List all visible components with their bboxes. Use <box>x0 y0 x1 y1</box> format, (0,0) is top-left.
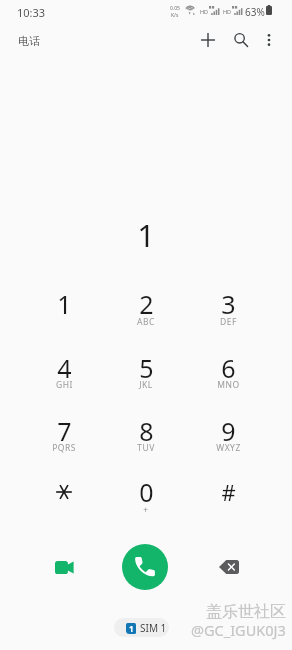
staticText: @GC_IGUK0J3 <box>191 620 286 640</box>
staticText: 6 <box>221 351 236 385</box>
button[interactable] <box>105 461 187 524</box>
button[interactable] <box>187 337 269 400</box>
staticText: JKL <box>139 379 153 391</box>
staticText: 1 <box>57 287 72 321</box>
button[interactable] <box>105 273 187 336</box>
staticText: HD <box>200 8 209 15</box>
staticText: 盖乐世社区 <box>206 602 286 622</box>
staticText: TUV <box>137 442 155 454</box>
button[interactable] <box>187 461 269 524</box>
staticText: 4 <box>57 351 72 385</box>
staticText: 2 <box>139 287 154 321</box>
button[interactable] <box>187 400 269 463</box>
button[interactable]: Search <box>225 24 257 56</box>
staticText: MNO <box>217 379 240 391</box>
staticText: GHI <box>56 379 73 391</box>
staticText: ABC <box>137 316 155 328</box>
staticText: 1 <box>129 623 134 634</box>
button[interactable]: More options <box>253 24 285 56</box>
staticText: WXYZ <box>216 442 241 454</box>
staticText: 1 <box>137 214 155 256</box>
button[interactable] <box>105 337 187 400</box>
button[interactable] <box>187 273 269 336</box>
staticText: DEF <box>220 316 237 328</box>
staticText: HD <box>223 8 232 15</box>
button[interactable] <box>105 400 187 463</box>
staticText: + <box>143 504 149 516</box>
staticText: 63% <box>245 5 265 19</box>
button[interactable] <box>23 461 105 524</box>
staticText: 3 <box>221 287 236 321</box>
button[interactable] <box>23 337 105 400</box>
button[interactable]: Add contact <box>192 24 224 56</box>
staticText: 7 <box>57 414 72 448</box>
button[interactable]: Call <box>122 544 168 590</box>
button[interactable]: 1 <box>114 618 169 637</box>
staticText: # <box>221 477 236 507</box>
button[interactable]: Backspace <box>211 549 247 585</box>
button[interactable] <box>23 273 105 336</box>
button[interactable] <box>23 400 105 463</box>
staticText: SIM 1 <box>140 621 167 635</box>
staticText: 10:33 <box>17 5 46 20</box>
staticText: 8 <box>139 414 154 448</box>
staticText: 9 <box>221 414 236 448</box>
staticText: 0.05 <box>170 5 180 12</box>
staticText: 5 <box>139 351 154 385</box>
staticText: PQRS <box>52 442 76 454</box>
staticText: 电话 <box>18 34 40 48</box>
staticText: 0 <box>139 475 154 509</box>
button[interactable]: Video call <box>46 549 82 585</box>
staticText: K/s <box>171 12 179 19</box>
